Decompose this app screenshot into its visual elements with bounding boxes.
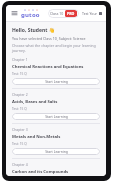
staticText: Test: 15 Q — [12, 72, 27, 76]
staticText: Start Learning — [45, 114, 68, 119]
staticText: Start Learning — [45, 149, 68, 154]
staticText: Chapter 2 — [12, 92, 28, 97]
button[interactable]: Start Learning — [12, 78, 100, 85]
staticText: Class 10 — [50, 11, 64, 16]
staticText: You have selected Class 10, Subject: Sci… — [12, 36, 86, 41]
staticText: Acids, Bases and Salts — [12, 99, 58, 105]
staticText: PRO — [67, 11, 75, 16]
staticText: Test: 15 Q — [12, 142, 27, 146]
staticText: Test Your — [82, 11, 98, 16]
button[interactable]: Test Your — [82, 11, 102, 16]
staticText: Chemical Reactions and Equations — [12, 64, 84, 70]
button[interactable]: Start Learning — [12, 148, 100, 155]
staticText: Carbon and its Compounds — [12, 169, 69, 175]
button[interactable]: gutoo — [21, 9, 40, 19]
button[interactable]: Start Learning — [12, 113, 100, 120]
staticText: Chapter 4 — [12, 162, 28, 167]
staticText: gutoo — [21, 11, 40, 19]
button[interactable]: Menu — [10, 9, 19, 18]
staticText: Choose what the chapter and begin your l… — [12, 43, 100, 53]
button[interactable]: Class 10 — [48, 9, 79, 18]
staticText: Chapter 1 — [12, 57, 28, 62]
staticText: Metals and Non-Metals — [12, 134, 61, 140]
staticText: Chapter 3 — [12, 127, 28, 132]
staticText: Test: 15 Q — [12, 107, 27, 111]
staticText: Hello, Student 👋 — [12, 27, 55, 34]
staticText: Start Learning — [45, 79, 68, 84]
